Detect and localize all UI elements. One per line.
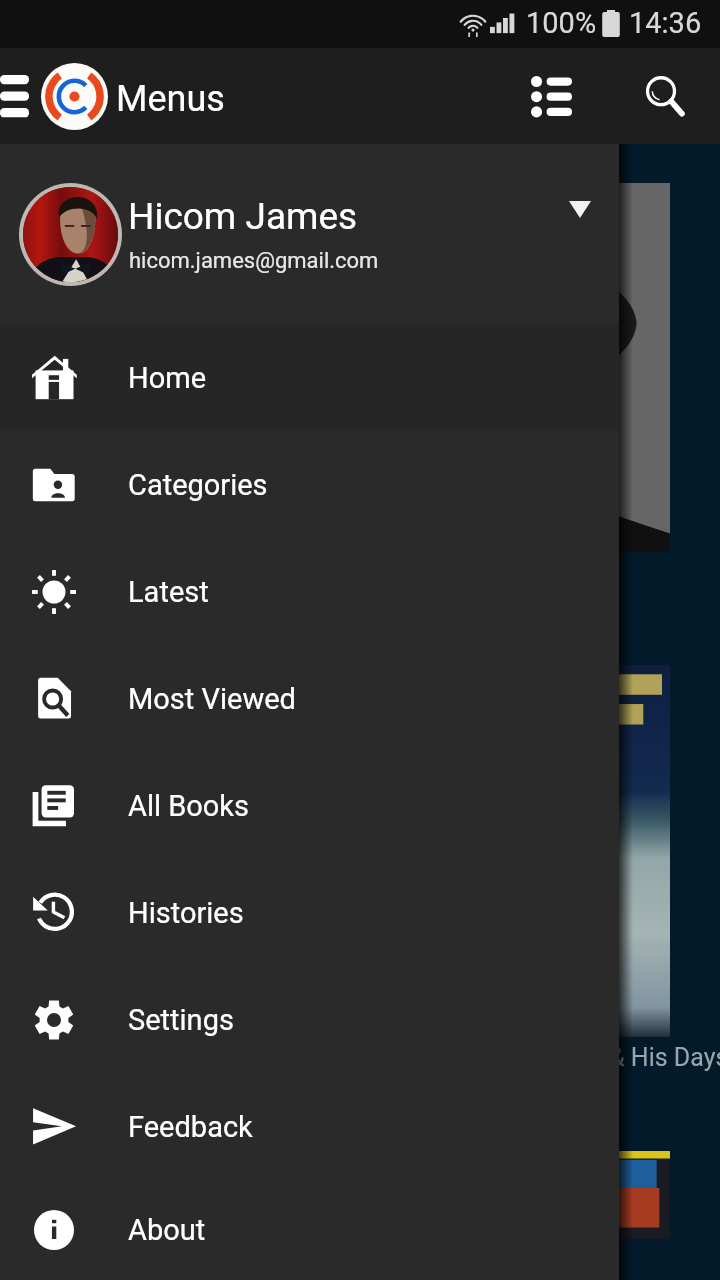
- staticText: 14:36: [629, 6, 702, 40]
- button[interactable]: List view: [507, 50, 595, 142]
- button[interactable]: Categories: [0, 431, 619, 538]
- button[interactable]: Search: [621, 50, 709, 142]
- staticText: Histories: [128, 896, 244, 930]
- staticText: Categories: [128, 468, 268, 502]
- staticText: All Books: [128, 789, 250, 823]
- staticText: Feedback: [128, 1110, 253, 1144]
- button[interactable]: Most Viewed: [0, 645, 619, 752]
- staticText: The Dog & His Days: [510, 1043, 720, 1072]
- staticText: Home: [128, 361, 207, 395]
- staticText: Hicom James: [128, 195, 358, 238]
- button[interactable]: Open navigation drawer: [0, 52, 40, 140]
- button[interactable]: Latest: [0, 538, 619, 645]
- staticText: Most Viewed: [128, 682, 296, 716]
- button[interactable]: About: [0, 1180, 619, 1280]
- button[interactable]: Histories: [0, 859, 619, 966]
- staticText: 100%: [526, 6, 597, 40]
- staticText: hicom.james@gmail.com: [129, 248, 379, 274]
- button[interactable]: Hicom James: [0, 144, 619, 324]
- staticText: Menus: [116, 78, 225, 120]
- staticText: Latest: [128, 575, 209, 609]
- staticText: About: [128, 1213, 206, 1247]
- button[interactable]: All Books: [0, 752, 619, 859]
- button[interactable]: Home: [0, 324, 619, 431]
- button[interactable]: Settings: [0, 966, 619, 1073]
- button[interactable]: Feedback: [0, 1073, 619, 1180]
- staticText: Settings: [128, 1003, 234, 1037]
